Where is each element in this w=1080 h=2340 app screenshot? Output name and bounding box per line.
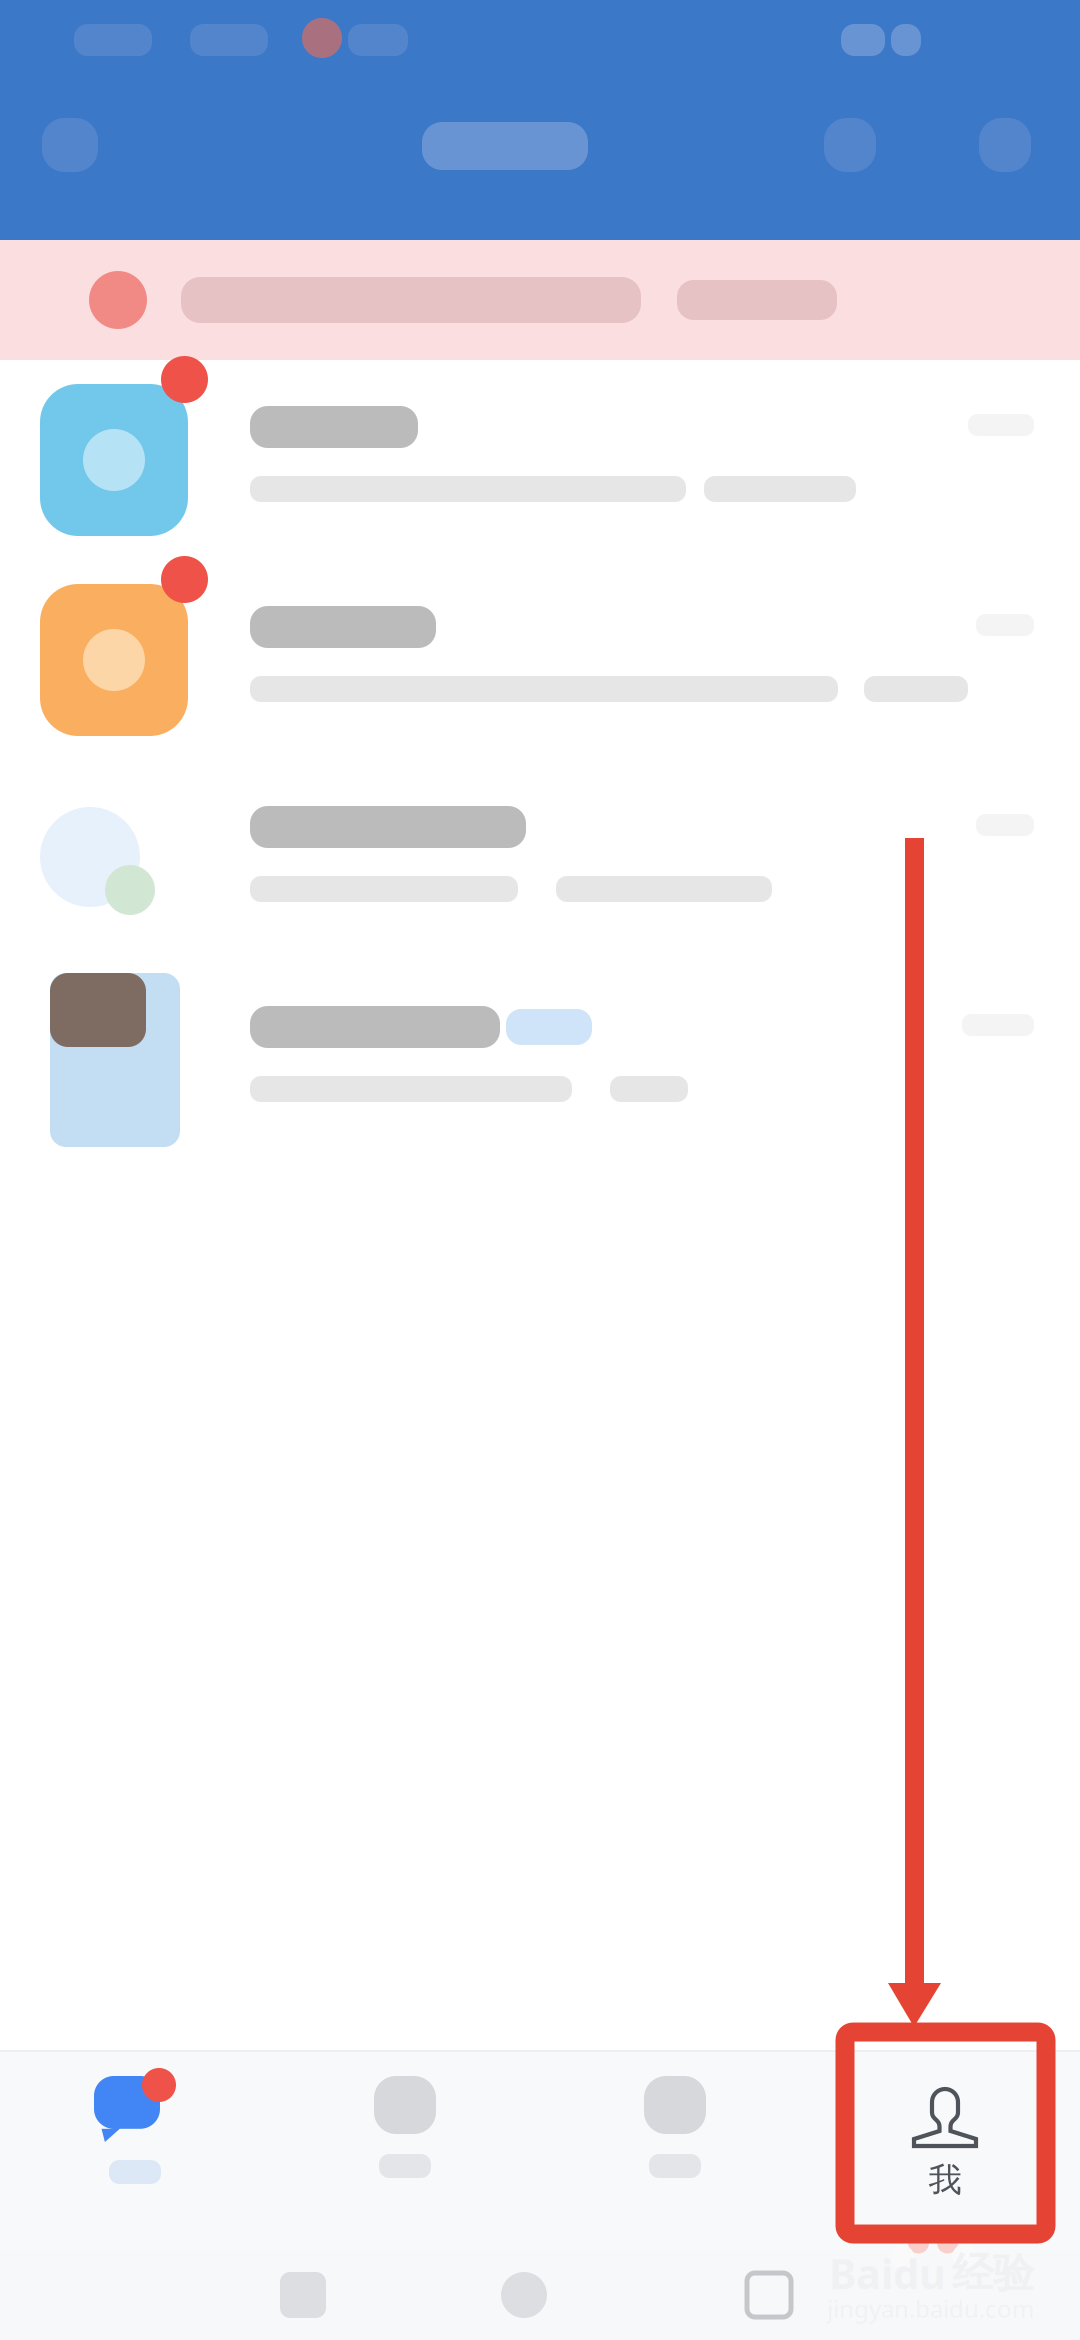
button[interactable]: Contacts <box>270 2052 540 2250</box>
button[interactable] <box>0 360 1080 560</box>
button[interactable] <box>0 960 1080 1160</box>
staticText: 我 <box>928 2159 961 2201</box>
button[interactable]: Messages <box>0 2052 270 2250</box>
button[interactable]: Recents <box>679 2250 859 2340</box>
button[interactable]: Discover <box>540 2052 810 2250</box>
button[interactable]: Home <box>434 2250 614 2340</box>
button[interactable] <box>0 560 1080 760</box>
button[interactable]: Back <box>213 2250 393 2340</box>
button[interactable]: Menu <box>0 118 140 172</box>
staticText: Baidu <box>829 2245 946 2301</box>
button[interactable]: Add <box>930 118 1080 172</box>
button[interactable] <box>0 240 1080 360</box>
button[interactable] <box>0 760 1080 960</box>
button[interactable]: 我 <box>810 2052 1080 2250</box>
staticText: 经验 <box>952 2247 1034 2299</box>
button[interactable]: Search <box>780 118 920 172</box>
